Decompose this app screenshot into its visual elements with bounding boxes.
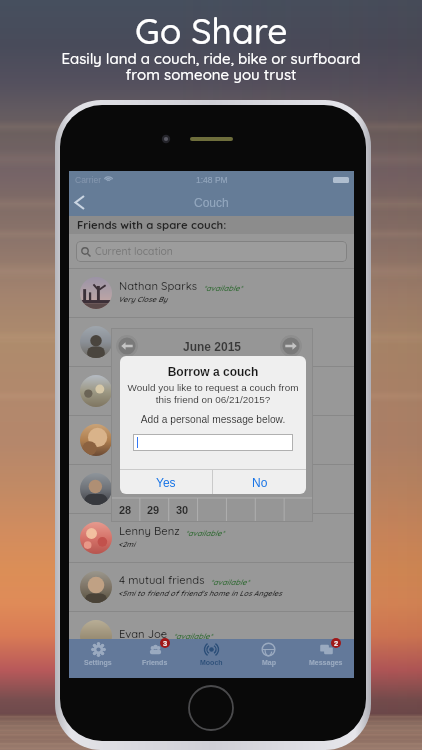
staticText: Current location [95, 245, 173, 258]
button[interactable]: Lenny Benz [69, 514, 354, 563]
button[interactable] [69, 318, 354, 367]
staticText: Nathan Sparks [119, 279, 198, 293]
button[interactable] [133, 434, 293, 451]
staticText: June 2015 [183, 340, 242, 353]
staticText: Carrier [75, 175, 101, 184]
staticText: *available* [185, 528, 225, 537]
button[interactable]: 3 [126, 639, 183, 678]
staticText: *available* [203, 283, 243, 292]
button[interactable]: Map [240, 639, 297, 678]
staticText: Evan Joe [119, 627, 168, 641]
staticText: <5mi to friend of friend's home in Los A… [118, 589, 282, 598]
staticText: Map [262, 659, 276, 667]
staticText: 28 [119, 504, 132, 516]
button[interactable] [69, 465, 354, 514]
button[interactable]: Evan Joe [69, 612, 354, 661]
staticText: 30 [176, 504, 189, 516]
staticText: *available* [173, 631, 213, 640]
staticText: Would you like to request a couch from t… [120, 382, 306, 405]
staticText: Go Share [135, 8, 288, 52]
staticText: Very Close By [118, 295, 168, 304]
button[interactable]: No [213, 470, 306, 494]
button[interactable]: Current location [76, 241, 347, 262]
staticText: Couch [194, 196, 229, 209]
button[interactable] [69, 416, 354, 465]
button[interactable] [69, 367, 354, 416]
staticText: <2mi [118, 540, 135, 549]
staticText: Messages [309, 659, 343, 667]
staticText: Friends [142, 659, 168, 667]
button[interactable]: Mooch [183, 639, 240, 678]
staticText: 2 [334, 639, 339, 647]
button[interactable]: Nathan Sparks [69, 269, 354, 318]
button[interactable]: Previous month [116, 335, 138, 357]
staticText: 4 mutual friends [119, 573, 205, 587]
button[interactable]: Yes [120, 470, 212, 494]
staticText: 3 [163, 639, 168, 647]
button[interactable]: Back [69, 188, 97, 216]
staticText: Easily land a couch, ride, bike or surfb… [61, 49, 361, 84]
staticText: Settings [84, 659, 112, 667]
staticText: No [252, 476, 268, 489]
staticText: Mooch [200, 659, 223, 667]
staticText: 1:48 PM [196, 175, 228, 184]
staticText: Yes [156, 476, 176, 489]
button[interactable]: Settings [69, 639, 126, 678]
staticText: *available* [210, 577, 250, 586]
button[interactable]: 2 [297, 639, 354, 678]
button[interactable]: Next month [280, 335, 302, 357]
staticText: 29 [147, 504, 160, 516]
staticText: Friends with a spare couch: [77, 218, 227, 232]
staticText: Borrow a couch [120, 365, 306, 378]
button[interactable]: 4 mutual friends [69, 563, 354, 612]
staticText: Add a personal message below. [120, 414, 306, 425]
staticText: Lenny Benz [119, 524, 180, 538]
